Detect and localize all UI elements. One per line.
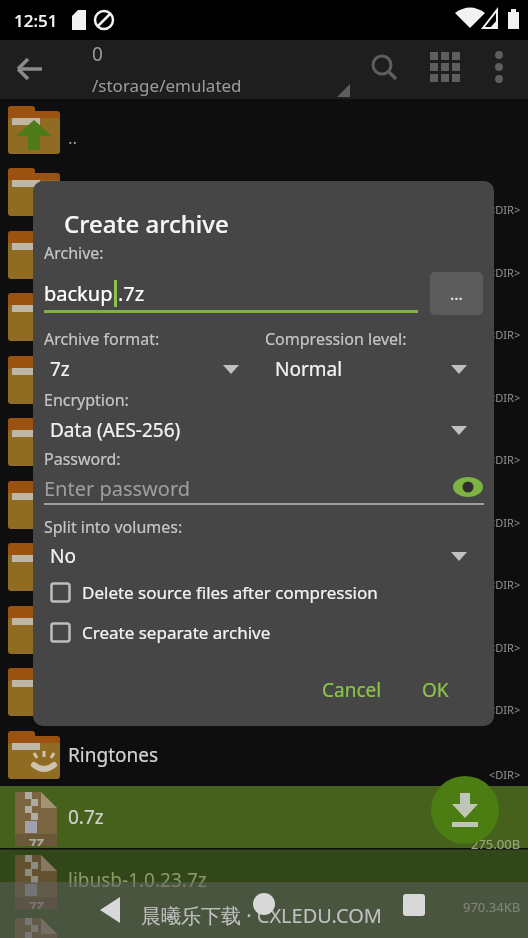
staticText: OK — [422, 677, 449, 703]
button[interactable]: Create separate archive — [50, 620, 271, 644]
staticText: <DIR> — [489, 452, 521, 467]
staticText: <DIR> — [489, 202, 521, 217]
button[interactable] — [0, 99, 528, 161]
button[interactable] — [44, 353, 254, 385]
staticText: ... — [450, 283, 463, 305]
staticText: <DIR> — [489, 515, 521, 530]
button[interactable] — [431, 776, 499, 844]
button[interactable] — [0, 411, 528, 473]
staticText: Cancel — [322, 677, 382, 703]
button[interactable] — [0, 849, 528, 912]
button[interactable] — [477, 45, 521, 89]
button[interactable]: Delete source files after compression — [50, 580, 378, 604]
staticText: Create archive — [64, 207, 229, 240]
button[interactable]: ... — [430, 272, 483, 315]
button[interactable] — [0, 161, 528, 223]
staticText: <DIR> — [489, 767, 521, 782]
staticText: Create separate archive — [82, 621, 271, 644]
button[interactable] — [0, 661, 528, 723]
staticText: 0.7z — [68, 804, 104, 830]
staticText: Normal — [275, 356, 343, 382]
staticText: Archive: — [44, 242, 104, 264]
staticText: backup — [44, 280, 113, 307]
staticText: 7Z — [29, 834, 44, 846]
staticText: 12:51 — [14, 9, 58, 32]
staticText: 7Z — [29, 897, 44, 909]
staticText: <DIR> — [489, 577, 521, 592]
staticText: 275.00B — [471, 835, 521, 853]
button[interactable]: OK — [405, 668, 465, 712]
button[interactable] — [423, 45, 467, 89]
button[interactable] — [44, 540, 484, 572]
button[interactable] — [0, 224, 528, 286]
staticText: Split into volumes: — [44, 516, 183, 538]
button[interactable] — [265, 353, 483, 385]
staticText: Archive format: — [44, 328, 160, 350]
staticText: /storage/emulated — [92, 74, 242, 97]
staticText: No — [50, 543, 76, 569]
staticText: Encryption: — [44, 389, 129, 411]
button[interactable] — [0, 599, 528, 661]
staticText: <DIR> — [489, 702, 521, 717]
staticText: <DIR> — [489, 265, 521, 280]
button[interactable] — [362, 45, 406, 89]
staticText: Ringtones — [68, 742, 159, 768]
staticText: 970.34KB — [463, 898, 521, 916]
button[interactable] — [0, 786, 528, 848]
staticText: <DIR> — [489, 390, 521, 405]
button[interactable] — [0, 474, 528, 536]
button[interactable] — [0, 724, 528, 786]
staticText: 7z — [50, 356, 70, 382]
staticText: 0 — [92, 41, 103, 67]
button[interactable] — [0, 536, 528, 598]
staticText: libusb-1.0.23.7z — [68, 867, 207, 893]
button[interactable] — [44, 472, 484, 504]
staticText: <DIR> — [489, 640, 521, 655]
button[interactable] — [0, 286, 528, 348]
button[interactable] — [10, 50, 54, 94]
button[interactable] — [0, 349, 528, 411]
button[interactable] — [44, 414, 484, 446]
staticText: .. — [68, 126, 78, 149]
staticText: 晨曦乐下载 · CXLEDU.COM — [141, 902, 382, 929]
staticText: Compression level: — [265, 328, 407, 350]
staticText: Delete source files after compression — [82, 581, 378, 604]
staticText: Data (AES-256) — [50, 417, 181, 443]
staticText: Password: — [44, 448, 121, 470]
staticText: <DIR> — [489, 327, 521, 342]
button[interactable] — [240, 886, 288, 934]
button[interactable]: Cancel — [304, 668, 400, 712]
staticText: .7z — [118, 280, 145, 307]
button[interactable] — [390, 886, 438, 934]
button[interactable] — [88, 886, 136, 934]
staticText: Enter password — [44, 475, 191, 502]
